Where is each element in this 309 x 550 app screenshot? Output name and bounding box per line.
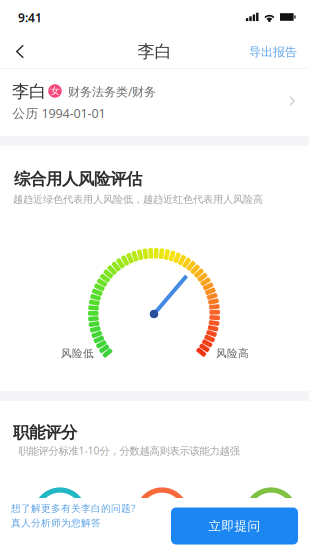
staticText: 女 (50, 85, 59, 97)
staticText: 导出报告 (249, 44, 297, 59)
staticText: 公历 1994-01-01 (12, 104, 105, 122)
button[interactable]: 立即提问 (171, 507, 298, 544)
button[interactable]: 导出报告 (242, 35, 304, 69)
staticText: 风险高 (216, 347, 249, 360)
staticText: 风险低 (61, 347, 94, 360)
staticText: 财务法务类/财务 (68, 83, 156, 100)
staticText: 综合用人风险评估 (14, 169, 142, 189)
button[interactable]: 返回 (4, 32, 36, 70)
button[interactable]: 李白 (0, 69, 309, 136)
staticText: 职能评分 (13, 422, 77, 443)
staticText: 真人分析师为您解答 (11, 517, 101, 529)
staticText: 李白 (137, 41, 171, 62)
staticText: 职能评分标准1-10分，分数越高则表示该能力越强 (18, 443, 239, 458)
staticText: 9:41 (18, 9, 42, 26)
staticText: 想了解更多有关李白的问题? (11, 501, 135, 515)
staticText: 立即提问 (208, 518, 260, 534)
staticText: 越趋近绿色代表用人风险低，越趋近红色代表用人风险高 (13, 193, 263, 206)
staticText: 李白 (12, 81, 46, 102)
